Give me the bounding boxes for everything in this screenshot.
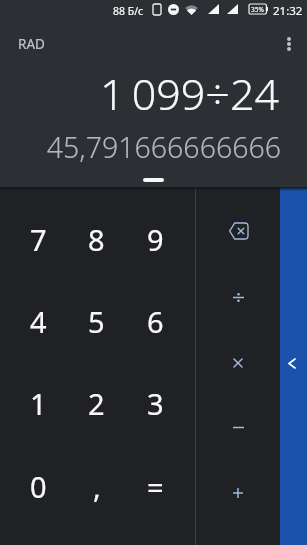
button[interactable]: , [67,445,126,528]
staticText: 3 [147,384,164,423]
button[interactable]: Backspace [196,198,280,264]
button[interactable]: 9 [126,198,185,280]
button[interactable]: Plus [196,460,280,525]
staticText: 45,791666666666 [0,128,281,167]
other: Divide [233,292,244,303]
button[interactable]: More options [269,24,307,64]
staticText: 35% [251,5,264,14]
staticText: 9 [147,220,164,259]
staticText: 8 [88,220,105,259]
staticText: , [93,467,101,506]
button[interactable]: Open history panel [280,187,307,545]
button[interactable]: Minus [196,395,280,460]
button[interactable]: Divide [196,264,280,330]
button[interactable]: RAD [18,35,45,53]
staticText: 0 [30,467,47,506]
other: Plus [233,488,243,498]
button[interactable]: 2 [67,362,126,445]
staticText: 88 Б/с [113,4,144,18]
button[interactable]: 7 [9,198,67,280]
button[interactable]: 3 [126,362,185,445]
staticText: 6 [147,302,164,341]
staticText: 1 099÷24 [0,64,279,123]
other: Minus [233,422,244,433]
staticText: 5 [88,302,105,341]
staticText: 7 [30,220,47,259]
staticText: 2 [88,384,105,423]
button[interactable]: Multiply [196,330,280,395]
staticText: 4 [30,302,47,341]
button[interactable]: 4 [9,280,67,362]
staticText: RAD [18,35,45,53]
staticText: 1 [30,384,47,423]
staticText: = [147,467,164,506]
button[interactable]: 5 [67,280,126,362]
button[interactable]: 1 [9,362,67,445]
other: Backspace [229,223,248,239]
button[interactable]: 0 [9,445,67,528]
staticText: 21:32 [273,3,303,19]
button[interactable]: 8 [67,198,126,280]
button[interactable]: 6 [126,280,185,362]
button[interactable]: = [126,445,185,528]
other: Multiply [234,359,242,367]
